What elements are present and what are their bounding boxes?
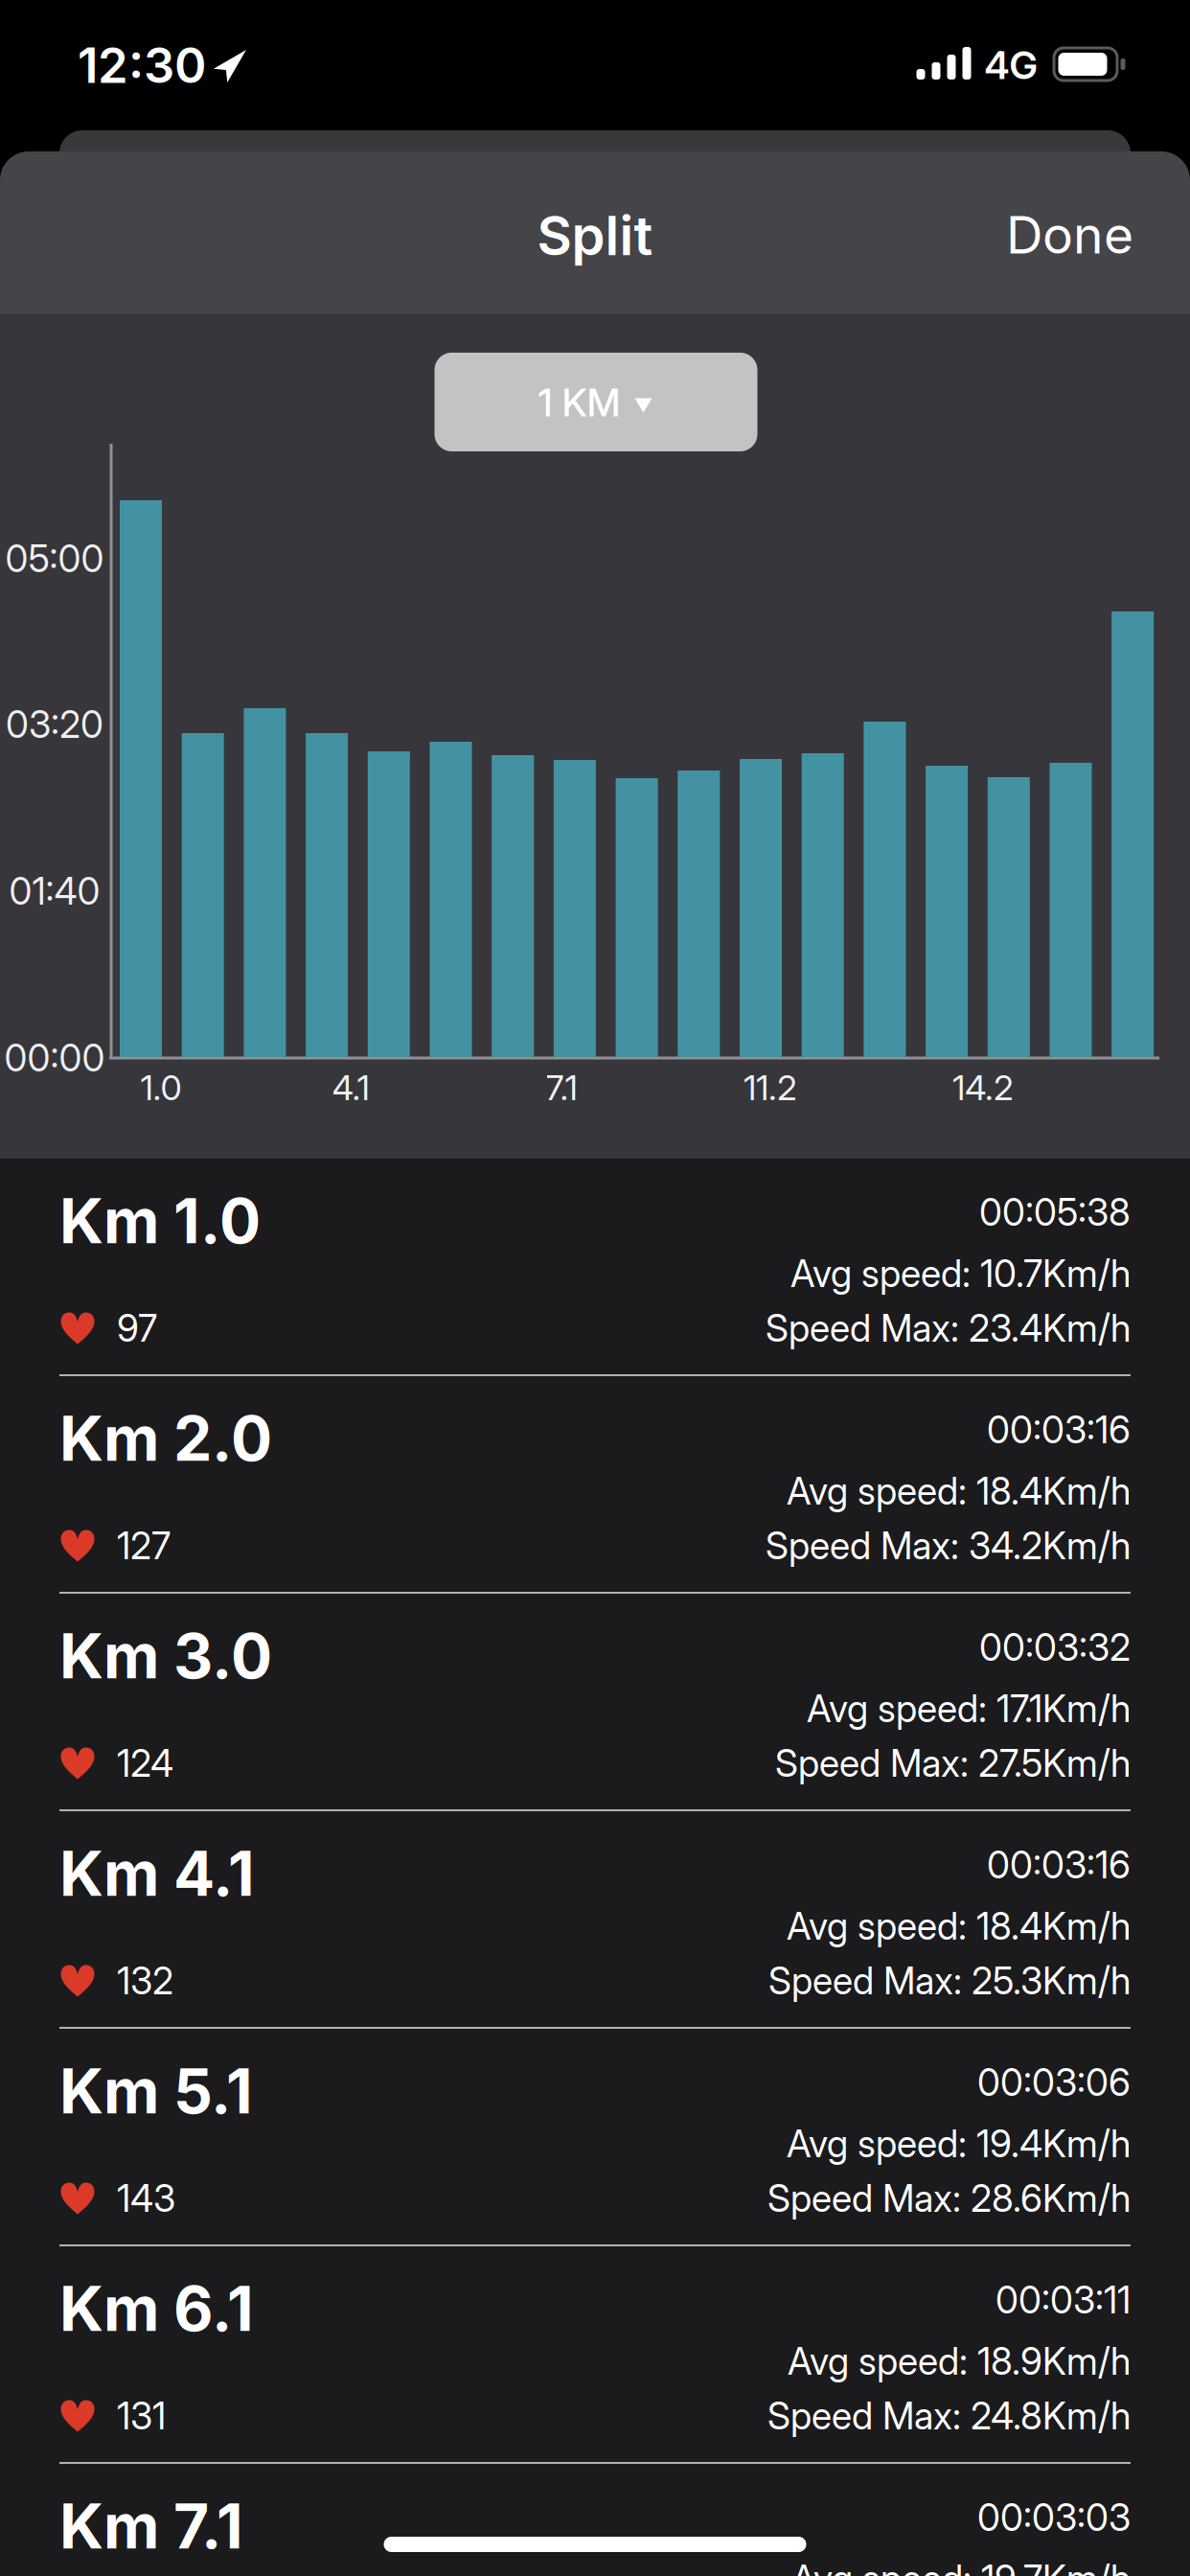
staticText: Km 6.1: [59, 2272, 254, 2346]
staticText: 01:40: [9, 869, 100, 914]
staticText: 00:00: [4, 1036, 105, 1080]
staticText: 05:00: [5, 536, 104, 581]
staticText: Speed Max: 24.8Km/h: [767, 2394, 1131, 2438]
staticText: Avg speed: 18.4Km/h: [787, 1469, 1131, 1514]
staticText: Km 3.0: [59, 1619, 272, 1693]
staticText: 1.0: [140, 1067, 182, 1109]
staticText: 12:30: [78, 36, 206, 94]
staticText: Avg speed: 18.4Km/h: [787, 1904, 1131, 1949]
staticText: 00:03:03: [977, 2495, 1131, 2540]
staticText: 97: [117, 1306, 157, 1351]
staticText: Km 7.1: [59, 2489, 243, 2563]
staticText: Speed Max: 23.4Km/h: [766, 1306, 1131, 1351]
staticText: 00:03:32: [979, 1625, 1131, 1670]
staticText: 03:20: [6, 702, 103, 747]
staticText: 127: [117, 1523, 171, 1568]
staticText: 132: [117, 1958, 173, 2003]
staticText: 00:03:16: [987, 1407, 1131, 1452]
staticText: Speed Max: 25.3Km/h: [768, 1958, 1131, 2003]
staticText: Speed Max: 27.5Km/h: [775, 1741, 1131, 1786]
staticText: 4G: [984, 42, 1037, 88]
staticText: 00:03:16: [987, 1842, 1131, 1887]
staticText: Avg speed: 17.1Km/h: [807, 1686, 1131, 1731]
staticText: Split: [537, 203, 653, 268]
staticText: 131: [117, 2394, 166, 2438]
staticText: Km 1.0: [59, 1184, 261, 1258]
staticText: 1 KM: [538, 379, 620, 426]
staticText: 00:03:06: [977, 2060, 1131, 2105]
staticText: Avg speed: 19.4Km/h: [787, 2121, 1131, 2166]
staticText: Speed Max: 34.2Km/h: [766, 1523, 1131, 1568]
staticText: Avg speed: 18.9Km/h: [788, 2339, 1131, 2384]
staticText: 11.2: [744, 1067, 797, 1109]
staticText: Avg speed: 19.7Km/h: [791, 2556, 1131, 2576]
staticText: Done: [1006, 204, 1133, 266]
staticText: Avg speed: 10.7Km/h: [790, 1251, 1131, 1296]
staticText: Speed Max: 28.6Km/h: [767, 2176, 1131, 2221]
staticText: 7.1: [546, 1067, 577, 1109]
staticText: 4.1: [332, 1067, 369, 1109]
staticText: 143: [117, 2176, 175, 2221]
staticText: Km 2.0: [59, 1401, 272, 1476]
staticText: 14.2: [952, 1067, 1014, 1109]
staticText: 124: [117, 1741, 173, 1786]
staticText: 00:05:38: [979, 1190, 1131, 1235]
staticText: 00:03:11: [995, 2278, 1131, 2322]
staticText: Km 4.1: [59, 1836, 255, 1911]
staticText: Km 5.1: [59, 2054, 253, 2128]
